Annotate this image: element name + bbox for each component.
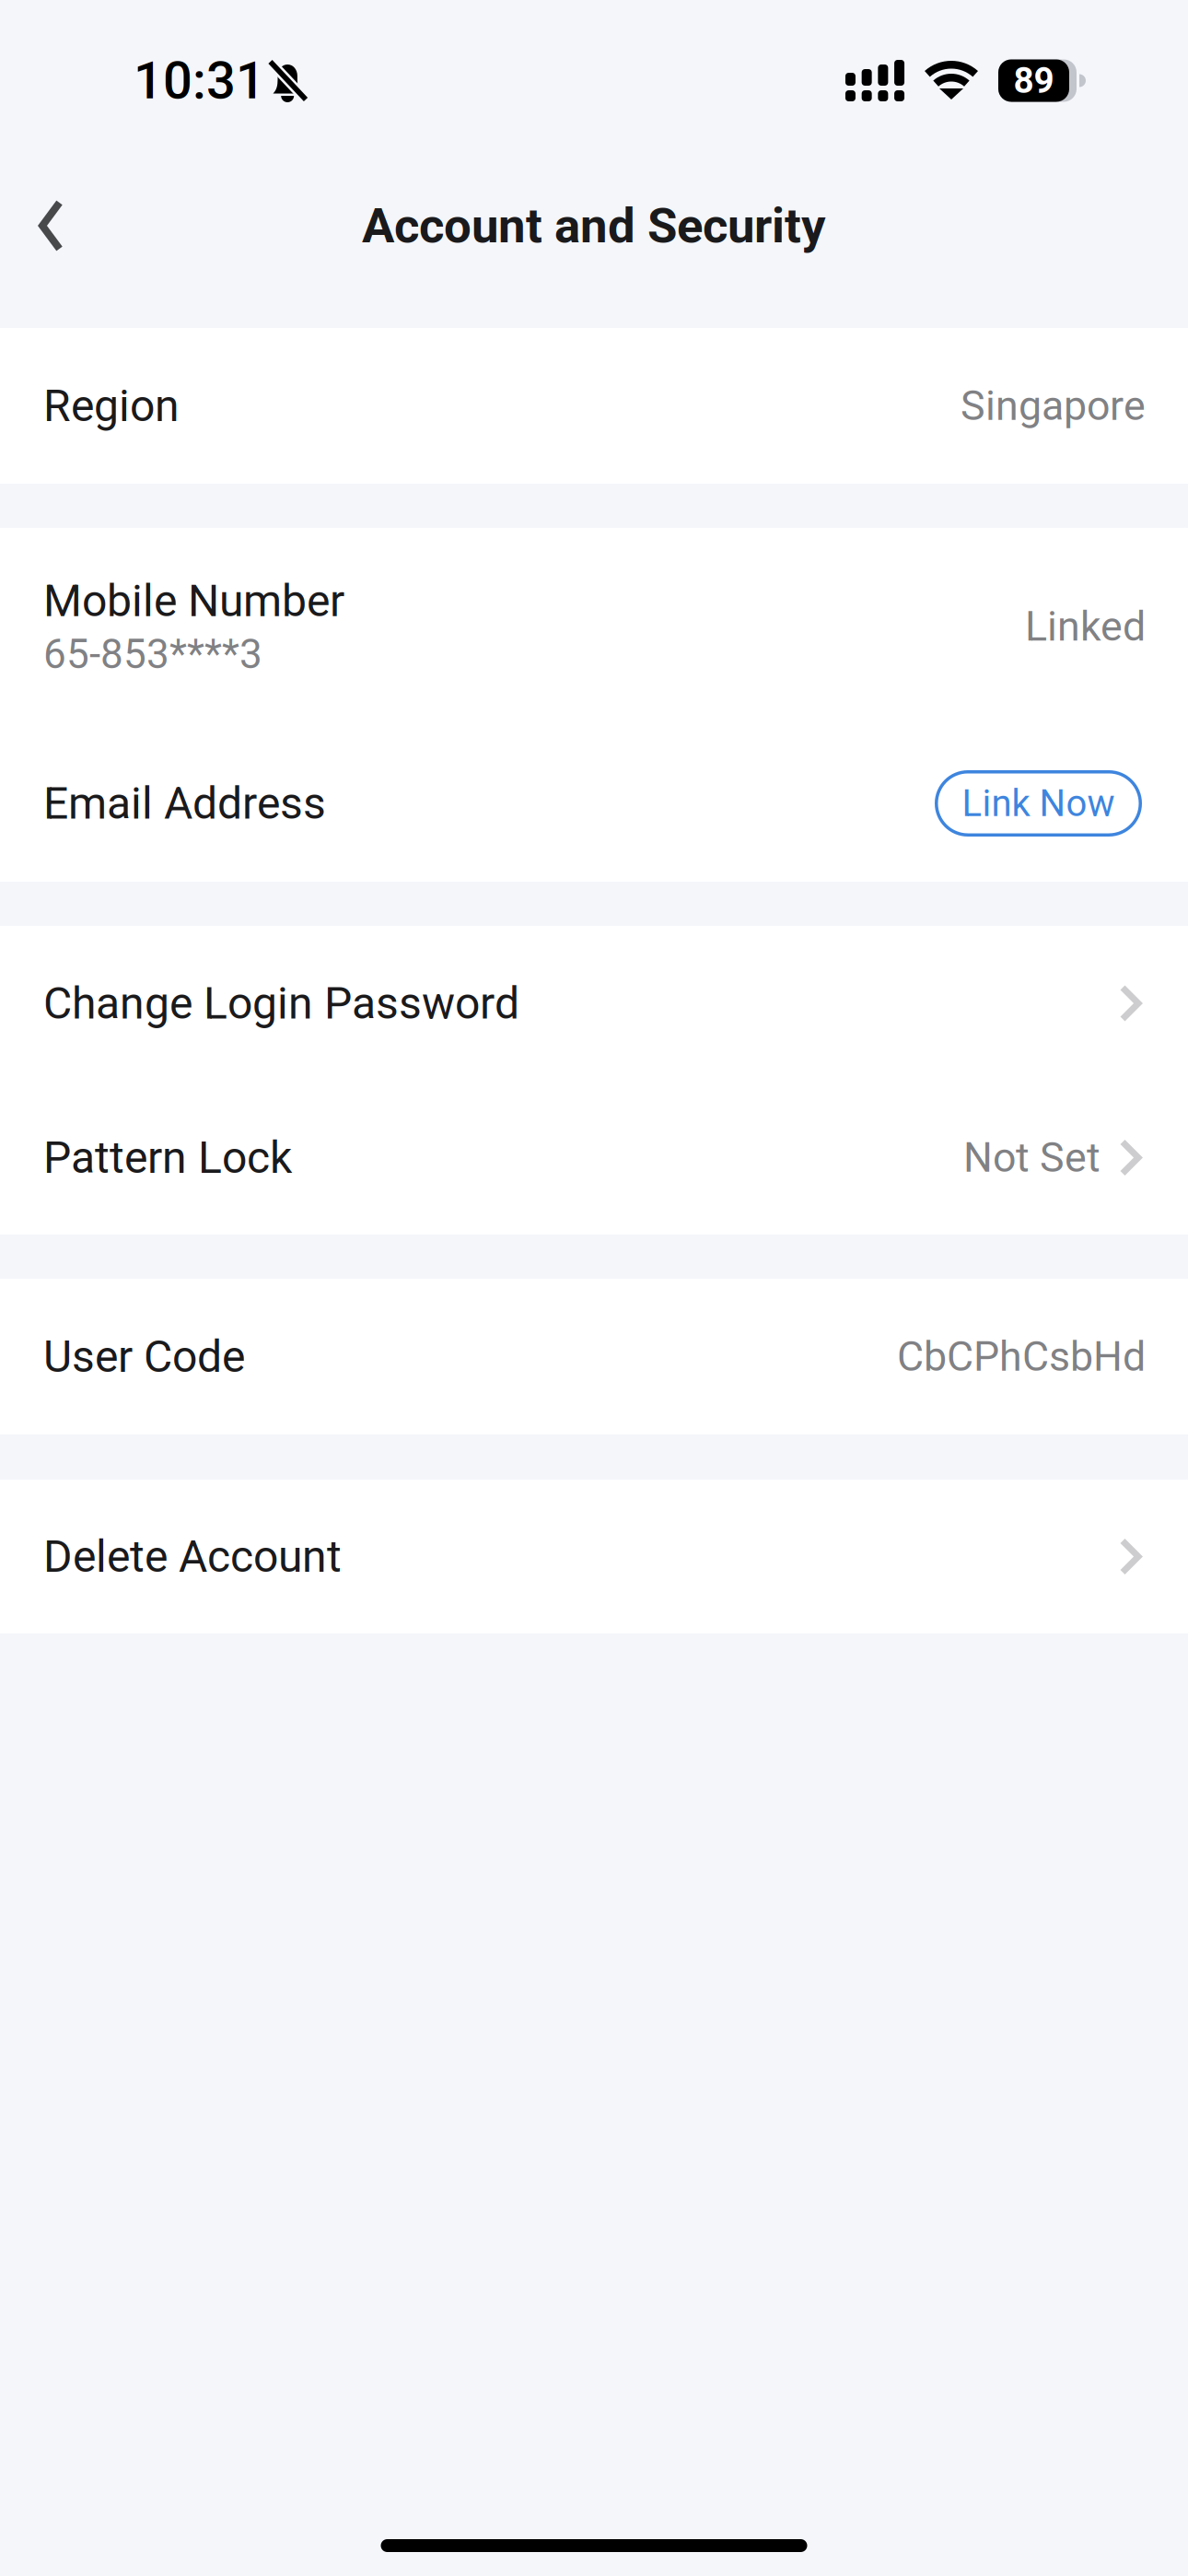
staticText: Link Now — [962, 782, 1115, 825]
staticText: Account and Security — [362, 197, 826, 254]
staticText: Change Login Password — [43, 977, 519, 1029]
button[interactable]: Back — [0, 175, 101, 276]
staticText: Not Set — [963, 1133, 1101, 1182]
button[interactable]: Email Address — [0, 725, 1188, 882]
staticText: 89 — [1013, 60, 1054, 101]
staticText: CbCPhCsbHd — [897, 1332, 1146, 1381]
staticText: 10:31 — [134, 50, 265, 111]
button[interactable]: Region — [0, 328, 1188, 484]
staticText: Region — [43, 380, 180, 432]
staticText: Pattern Lock — [43, 1132, 292, 1184]
button[interactable]: Change Login Password — [0, 926, 1188, 1081]
staticText: Singapore — [961, 382, 1146, 430]
button[interactable]: User Code — [0, 1279, 1188, 1434]
staticText: User Code — [43, 1331, 245, 1383]
staticText: Mobile Number — [43, 575, 344, 627]
staticText: Delete Account — [43, 1531, 342, 1582]
staticText: Email Address — [43, 777, 326, 829]
staticText: 65-853****3 — [43, 630, 262, 678]
staticText: Linked — [1025, 602, 1146, 651]
button[interactable]: Pattern Lock — [0, 1081, 1188, 1235]
button[interactable]: Mobile Number — [0, 528, 1188, 725]
button[interactable]: Delete Account — [0, 1480, 1188, 1633]
